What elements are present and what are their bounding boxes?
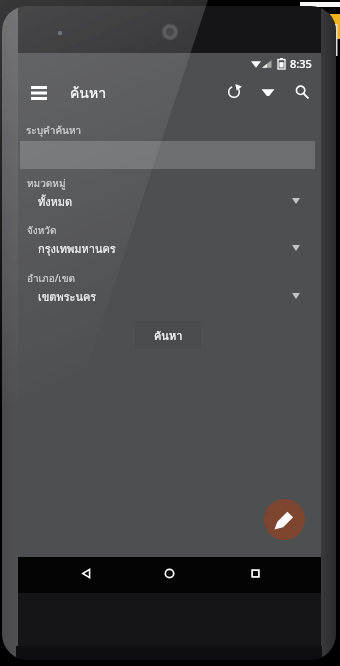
staticText: กรุงเทพมหานคร xyxy=(38,240,116,257)
staticText: อำเภอ/เขต xyxy=(27,271,76,287)
button[interactable] xyxy=(20,141,315,169)
button[interactable]: เขตพระนคร xyxy=(18,287,321,305)
staticText: ทั้งหมด xyxy=(38,193,73,210)
button[interactable]: Filter xyxy=(254,78,282,106)
button[interactable]: Add xyxy=(264,499,305,540)
staticText: ค้นหา xyxy=(154,327,183,344)
button[interactable]: กรุงเทพมหานคร xyxy=(18,239,321,257)
button[interactable]: Menu xyxy=(24,78,54,108)
staticText: เขตพระนคร xyxy=(38,288,97,305)
button[interactable]: Recents xyxy=(240,559,270,588)
staticText: หมวดหมู่ xyxy=(27,176,66,192)
staticText: ค้นหา xyxy=(70,82,107,104)
button[interactable]: Refresh xyxy=(220,78,248,106)
button[interactable]: Home xyxy=(154,559,184,588)
staticText: ระบุคำค้นหา xyxy=(26,123,82,139)
button[interactable]: ทั้งหมด xyxy=(18,192,321,210)
button[interactable]: ค้นหา xyxy=(135,321,201,349)
staticText: 8:35 xyxy=(290,56,312,71)
staticText: จังหวัด xyxy=(27,223,57,239)
button[interactable]: Search xyxy=(288,78,316,106)
button[interactable]: Back xyxy=(71,559,101,588)
